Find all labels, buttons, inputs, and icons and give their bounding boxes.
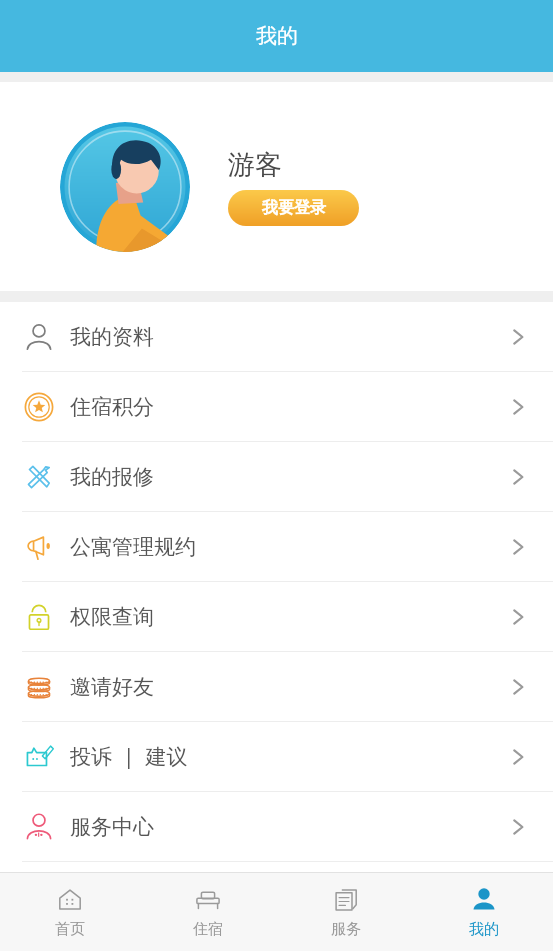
staticText: 我要登录 (262, 198, 326, 218)
other: 服务 (331, 885, 361, 915)
button[interactable]: 投诉 | 建议 (0, 722, 553, 791)
button[interactable]: 公寓管理规约 (0, 512, 553, 581)
staticText: 我的资料 (70, 324, 507, 350)
button[interactable]: 服务中心 (0, 792, 553, 861)
other: 首页 (55, 885, 85, 915)
button[interactable]: 住宿积分 (0, 372, 553, 441)
staticText: 住宿 (193, 920, 223, 939)
button[interactable]: 我要登录 (228, 190, 359, 226)
staticText: 服务 (331, 920, 361, 939)
button[interactable]: 权限查询 (0, 582, 553, 651)
button[interactable]: 我的资料 (0, 302, 553, 371)
other: 我的 (469, 885, 499, 915)
button[interactable]: 邀请好友 (0, 652, 553, 721)
button[interactable]: 我的 (415, 872, 553, 951)
staticText: 公寓管理规约 (70, 534, 507, 560)
button[interactable]: 首页 (0, 872, 139, 951)
staticText: 服务中心 (70, 814, 507, 840)
staticText: 权限查询 (70, 604, 507, 630)
staticText: 游客 (228, 148, 282, 182)
staticText: 我的 (256, 23, 298, 49)
button[interactable]: 我的报修 (0, 442, 553, 511)
staticText: 住宿积分 (70, 394, 507, 420)
staticText: 投诉 | 建议 (70, 742, 507, 771)
button[interactable]: 住宿 (139, 872, 277, 951)
staticText: 邀请好友 (70, 674, 507, 700)
other: 住宿 (193, 885, 223, 915)
button[interactable]: 服务 (277, 872, 415, 951)
staticText: 我的 (469, 920, 499, 939)
button[interactable]: 游客 (0, 82, 553, 291)
staticText: 首页 (55, 920, 85, 939)
staticText: 我的报修 (70, 464, 507, 490)
